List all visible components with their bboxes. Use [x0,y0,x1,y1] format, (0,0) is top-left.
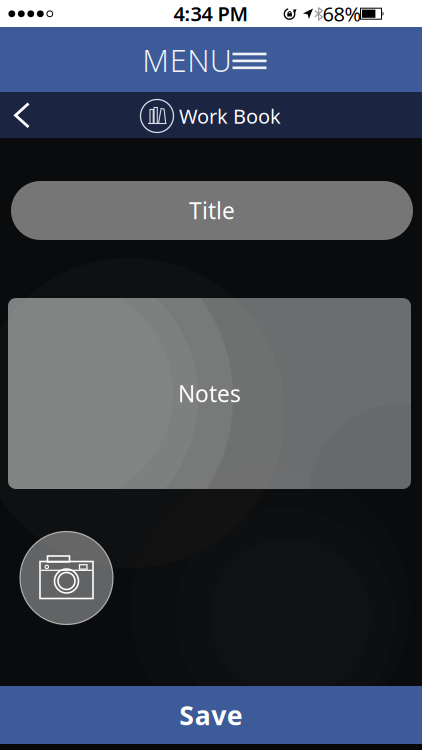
staticText: MENU [142,40,232,80]
staticText: Work Book [179,103,281,129]
button[interactable]: Title [11,181,413,240]
button[interactable]: Save [0,686,422,744]
staticText: Title [189,195,235,225]
button[interactable]: Back [0,92,422,138]
staticText: Save [179,697,243,733]
staticText: 4:34 PM [173,0,248,27]
staticText: Notes [178,378,241,408]
button[interactable]: Menu [0,27,422,92]
staticText: 68% [322,0,361,27]
button[interactable]: Take photo [20,531,113,624]
button[interactable]: Notes [8,298,411,489]
